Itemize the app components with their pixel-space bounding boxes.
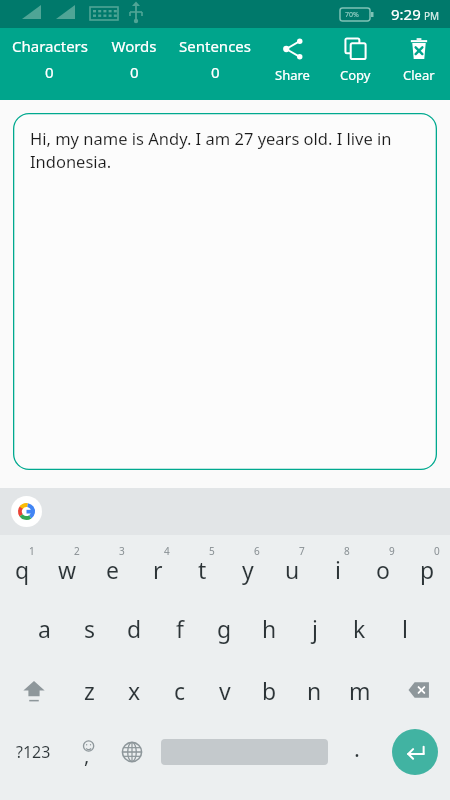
staticText: 1 [29, 544, 35, 558]
staticText: v [219, 675, 231, 706]
staticText: 70% [345, 10, 359, 20]
button[interactable]: f [157, 597, 202, 659]
button[interactable]: d [112, 597, 157, 659]
staticText: Words [111, 36, 157, 56]
staticText: r [153, 554, 163, 585]
button[interactable]: Characters [0, 28, 99, 82]
button[interactable]: Share [261, 28, 324, 84]
button[interactable]: 1 [0, 535, 45, 597]
button[interactable]: 9 [360, 535, 405, 597]
button[interactable]: z [67, 659, 112, 721]
button[interactable] [154, 721, 335, 783]
staticText: ?123 [16, 741, 51, 763]
button[interactable]: m [337, 659, 382, 721]
staticText: 0 [434, 544, 440, 558]
button[interactable]: v [202, 659, 247, 721]
staticText: 0 [211, 62, 220, 82]
button[interactable]: b [247, 659, 292, 721]
staticText: q [15, 554, 30, 585]
button[interactable]: . [335, 721, 379, 783]
button[interactable]: a [22, 597, 67, 659]
staticText: 5 [209, 544, 215, 558]
staticText: Sentences [179, 36, 251, 56]
button[interactable]: Backspace [382, 659, 450, 721]
button[interactable]: 0 [405, 535, 450, 597]
button[interactable]: Words [99, 28, 169, 82]
staticText: s [84, 613, 96, 644]
button[interactable]: c [157, 659, 202, 721]
button[interactable]: k [337, 597, 382, 659]
button[interactable]: 2 [45, 535, 90, 597]
staticText: Clear [403, 66, 435, 84]
button[interactable]: Clear [387, 28, 450, 84]
staticText: Hi, my name is Andy. I am 27 years old. … [30, 127, 429, 173]
button[interactable]: h [247, 597, 292, 659]
staticText: n [307, 675, 322, 706]
staticText: t [198, 554, 207, 585]
staticText: 9:29 [391, 4, 421, 24]
button[interactable]: 8 [315, 535, 360, 597]
button[interactable]: Hi, my name is Andy. I am 27 years old. … [13, 113, 437, 470]
staticText: w [58, 554, 77, 585]
staticText: 0 [45, 62, 54, 82]
button[interactable]: Google search [11, 496, 42, 527]
button[interactable]: 5 [180, 535, 225, 597]
button[interactable]: Shift [0, 659, 67, 721]
button[interactable]: Emoji and comma [66, 721, 110, 783]
button[interactable]: l [382, 597, 427, 659]
staticText: z [84, 675, 95, 706]
button[interactable]: n [292, 659, 337, 721]
staticText: PM [424, 9, 440, 23]
staticText: g [217, 613, 232, 644]
staticText: 4 [164, 544, 170, 558]
button[interactable]: 4 [135, 535, 180, 597]
staticText: f [176, 613, 184, 644]
button[interactable]: Change language [110, 721, 154, 783]
staticText: l [402, 613, 408, 644]
staticText: m [349, 675, 371, 706]
staticText: d [127, 613, 142, 644]
staticText: h [262, 613, 277, 644]
staticText: j [312, 613, 318, 644]
button[interactable]: 7 [270, 535, 315, 597]
staticText: i [335, 554, 341, 585]
staticText: 0 [130, 62, 139, 82]
staticText: c [174, 675, 186, 706]
staticText: . [354, 733, 360, 763]
staticText: 6 [254, 544, 260, 558]
staticText: Copy [340, 66, 371, 84]
button[interactable]: s [67, 597, 112, 659]
staticText: x [128, 675, 141, 706]
staticText: 9 [389, 544, 395, 558]
staticText: y [242, 554, 254, 585]
staticText: k [353, 613, 366, 644]
staticText: o [376, 554, 390, 585]
staticText: b [262, 675, 277, 706]
button[interactable]: 3 [90, 535, 135, 597]
staticText: Share [275, 66, 310, 84]
staticText: 8 [344, 544, 350, 558]
staticText: e [106, 554, 119, 585]
button[interactable]: x [112, 659, 157, 721]
staticText: , [84, 742, 90, 769]
staticText: a [38, 613, 51, 644]
button[interactable]: Enter [379, 721, 450, 783]
staticText: p [420, 554, 435, 585]
button[interactable]: Sentences [169, 28, 261, 82]
button[interactable]: ?123 [0, 721, 66, 783]
staticText: 2 [74, 544, 80, 558]
staticText: 7 [299, 544, 305, 558]
button[interactable]: Copy [324, 28, 387, 84]
staticText: 3 [119, 544, 125, 558]
staticText: u [285, 554, 300, 585]
staticText: Characters [12, 36, 88, 56]
button[interactable]: j [292, 597, 337, 659]
button[interactable]: g [202, 597, 247, 659]
button[interactable]: 6 [225, 535, 270, 597]
